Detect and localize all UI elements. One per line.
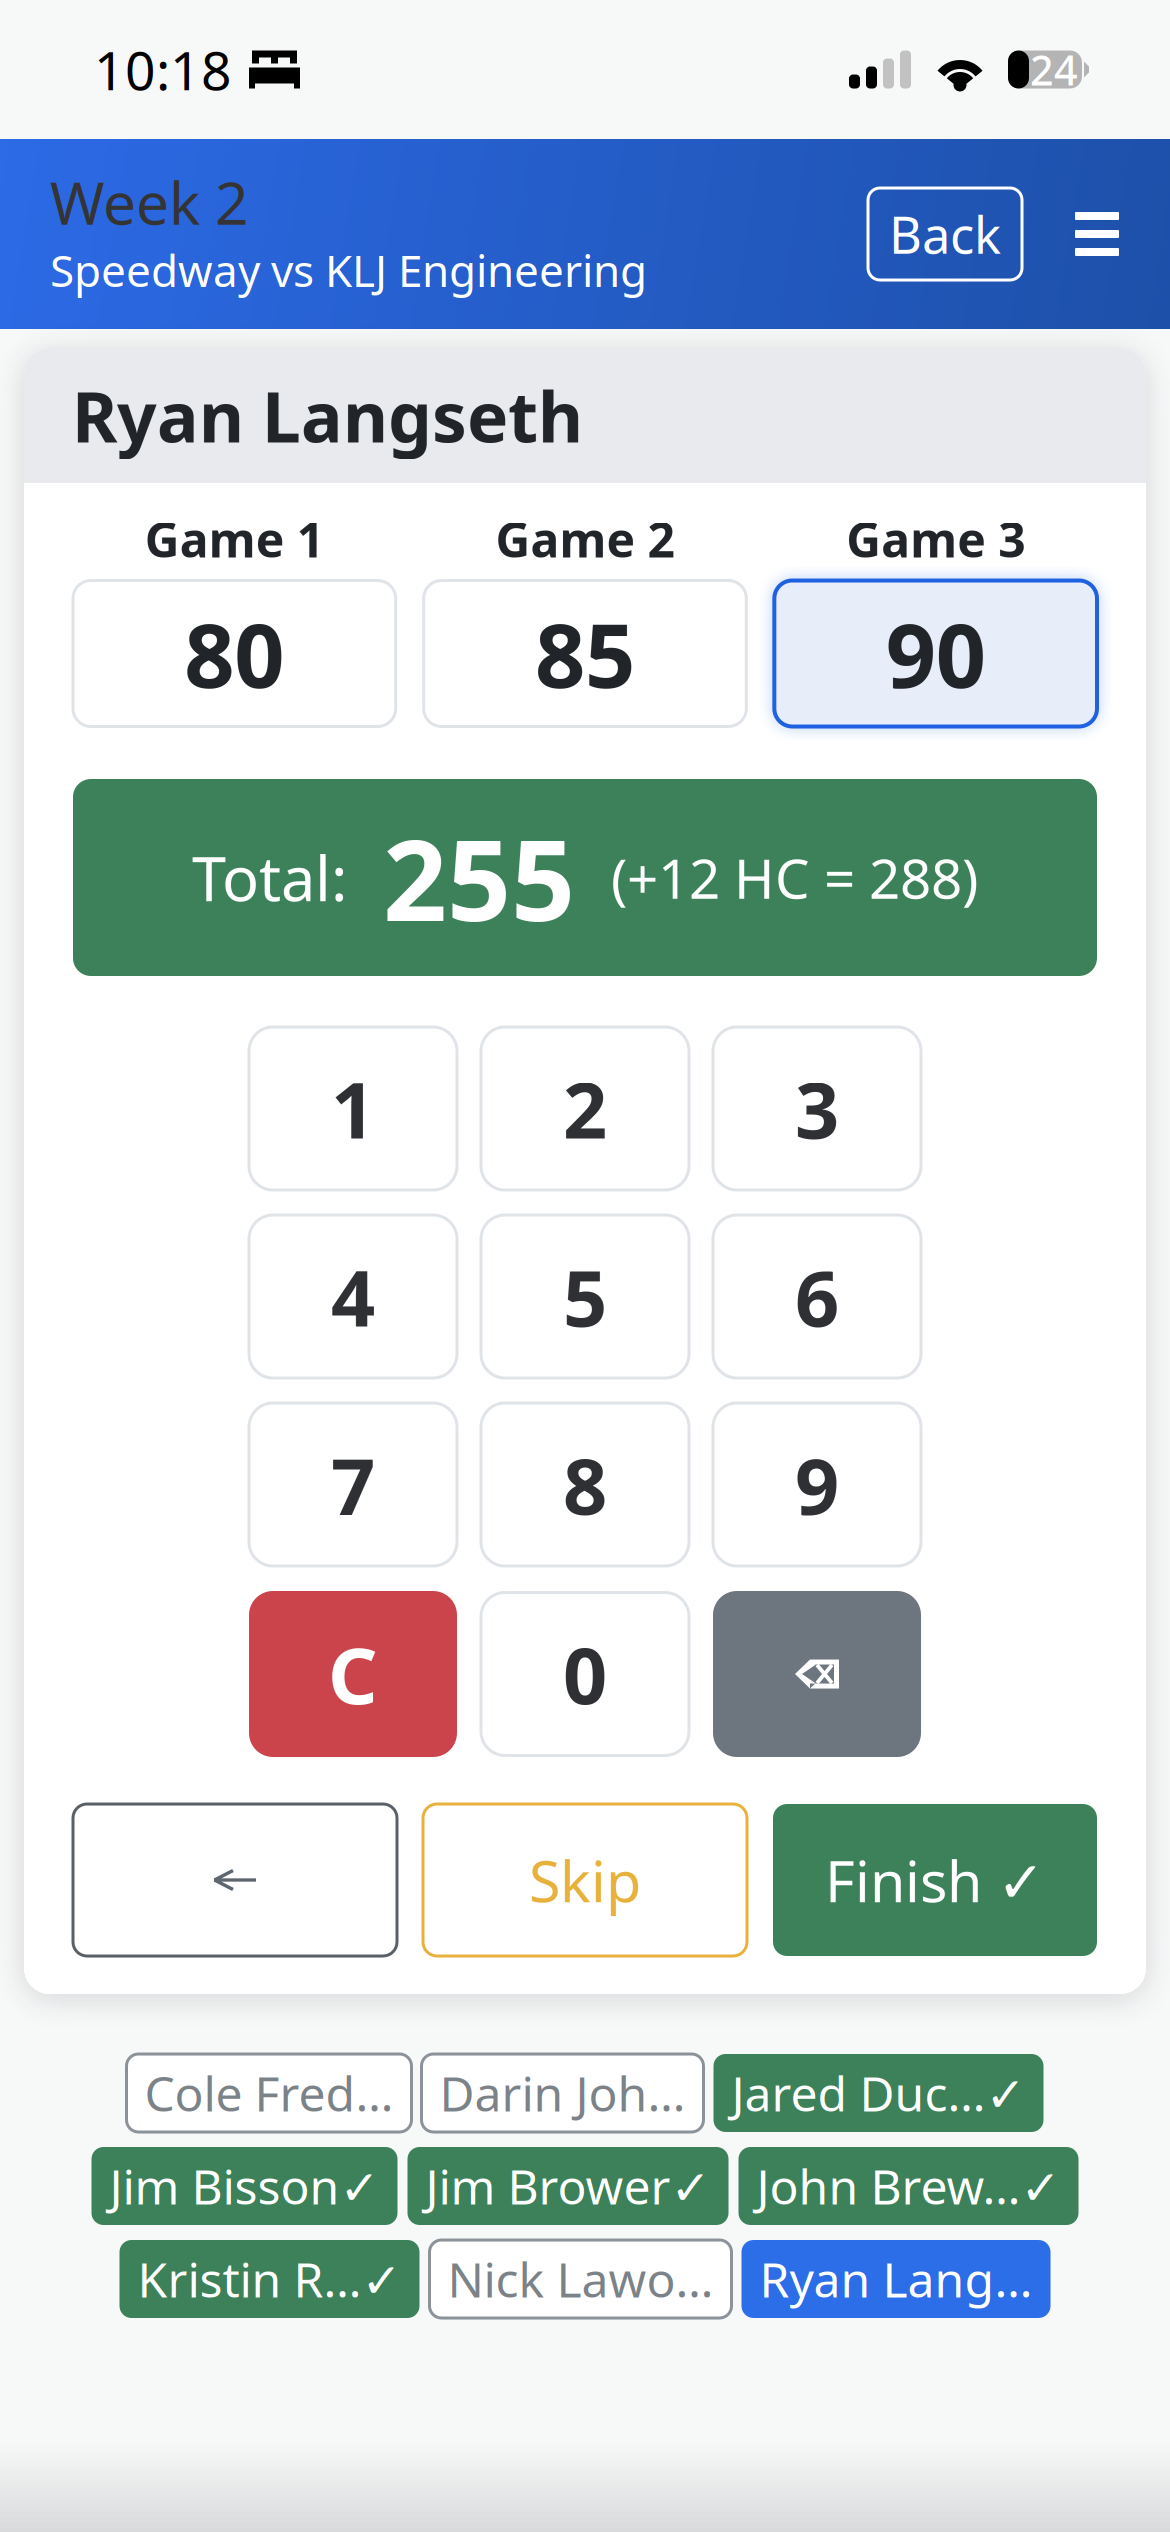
staticText: Finish ✓ xyxy=(825,1842,1045,1918)
button[interactable]: 3 xyxy=(713,1027,921,1190)
staticText: Darin Joh… xyxy=(439,2061,685,2125)
staticText: 5 xyxy=(563,1245,607,1348)
button[interactable]: 2 xyxy=(481,1027,689,1190)
button[interactable]: Jim Bisson✓ xyxy=(91,2147,397,2225)
button[interactable]: Ryan Lang… xyxy=(741,2240,1050,2318)
staticText: Week 2 xyxy=(50,163,249,241)
staticText: Skip xyxy=(529,1842,641,1918)
button[interactable]: 5 xyxy=(481,1215,689,1378)
staticText: (+12 HC = 288) xyxy=(611,841,978,914)
staticText: 7 xyxy=(331,1433,375,1536)
button[interactable]: 85 xyxy=(424,568,746,738)
button[interactable]: 0 xyxy=(481,1592,689,1755)
staticText: Kristin R…✓ xyxy=(137,2247,401,2311)
staticText: Speedway vs KLJ Engineering xyxy=(50,241,647,299)
staticText: C xyxy=(328,1623,378,1725)
staticText: 8 xyxy=(563,1433,607,1536)
staticText: 24 xyxy=(1030,42,1078,97)
button[interactable]: Cole Fred… xyxy=(126,2054,411,2132)
button[interactable]: 90 xyxy=(774,568,1097,738)
staticText: Jim Bisson✓ xyxy=(109,2154,379,2218)
staticText: Game 2 xyxy=(495,507,674,571)
button[interactable]: Finish ✓ xyxy=(773,1804,1097,1956)
button[interactable]: Jim Brower✓ xyxy=(407,2147,728,2225)
button[interactable]: 7 xyxy=(249,1403,457,1566)
button[interactable]: 1 xyxy=(249,1027,457,1190)
staticText: 0 xyxy=(563,1623,607,1725)
button[interactable]: Menu xyxy=(1062,189,1132,279)
button[interactable]: C xyxy=(249,1591,457,1757)
button[interactable]: Kristin R…✓ xyxy=(119,2240,419,2318)
staticText: Game 3 xyxy=(846,507,1025,571)
button[interactable]: Darin Joh… xyxy=(421,2054,703,2132)
button[interactable]: Delete xyxy=(713,1591,921,1757)
button[interactable]: Skip xyxy=(423,1804,747,1956)
staticText: John Brew…✓ xyxy=(756,2154,1060,2218)
staticText: Jared Duc…✓ xyxy=(731,2061,1025,2125)
staticText: 90 xyxy=(886,595,986,712)
button[interactable]: 80 xyxy=(73,568,396,738)
staticText: 6 xyxy=(795,1245,839,1348)
staticText: 4 xyxy=(331,1245,375,1348)
staticText: 1 xyxy=(331,1057,375,1160)
staticText: 255 xyxy=(383,803,575,952)
button[interactable]: Previous player xyxy=(73,1804,397,1956)
staticText: 2 xyxy=(563,1057,607,1160)
button[interactable]: Jared Duc…✓ xyxy=(713,2054,1043,2132)
button[interactable]: 6 xyxy=(713,1215,921,1378)
button[interactable]: 9 xyxy=(713,1403,921,1566)
staticText: Ryan Lang… xyxy=(759,2247,1032,2311)
button[interactable]: 4 xyxy=(249,1215,457,1378)
staticText: 3 xyxy=(795,1057,839,1160)
staticText: Cole Fred… xyxy=(144,2061,393,2125)
staticText: 9 xyxy=(795,1433,839,1536)
staticText: 85 xyxy=(535,595,635,712)
staticText: Nick Lawo… xyxy=(447,2247,713,2311)
staticText: Ryan Langseth xyxy=(72,369,583,462)
staticText: Total: xyxy=(192,837,347,918)
staticText: Jim Brower✓ xyxy=(425,2154,710,2218)
staticText: Back xyxy=(889,200,1001,268)
button[interactable]: John Brew…✓ xyxy=(738,2147,1078,2225)
staticText: Game 1 xyxy=(145,507,324,571)
button[interactable]: Nick Lawo… xyxy=(429,2240,731,2318)
button[interactable]: Back xyxy=(868,188,1022,280)
staticText: 10:18 xyxy=(94,34,232,105)
staticText: 80 xyxy=(184,595,284,712)
button[interactable]: 8 xyxy=(481,1403,689,1566)
